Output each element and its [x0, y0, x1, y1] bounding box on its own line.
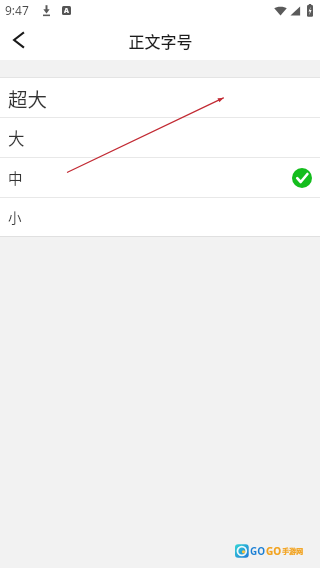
button[interactable]: 小: [0, 198, 320, 236]
staticText: GO: [266, 544, 282, 558]
button[interactable]: 中: [0, 158, 320, 197]
button[interactable]: 大: [0, 118, 320, 157]
staticText: 9:47: [5, 2, 29, 18]
staticText: GO: [250, 544, 266, 558]
staticText: 手游网: [282, 546, 303, 556]
staticText: 超大: [8, 84, 48, 112]
staticText: 小: [8, 207, 22, 227]
button[interactable]: 超大: [0, 78, 320, 117]
staticText: 大: [8, 126, 25, 150]
staticText: 中: [8, 167, 23, 188]
staticText: A: [64, 6, 69, 15]
staticText: 正文字号: [128, 29, 193, 52]
button[interactable]: Back: [0, 20, 36, 60]
